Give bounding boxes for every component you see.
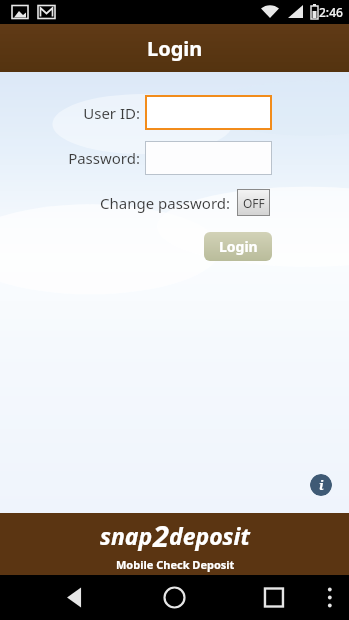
button[interactable]: Information [310,474,332,496]
button[interactable]: Password input [145,141,272,175]
staticText: Password: [28,148,140,168]
button[interactable]: Login [204,232,272,261]
staticText: deposit [169,520,250,551]
staticText: User ID: [28,103,140,123]
staticText: i [319,476,324,494]
button[interactable]: OFF [237,189,270,216]
staticText: 2 [153,516,169,555]
staticText: Login [219,237,258,256]
staticText: Login [147,35,203,62]
staticText: Change password: [100,193,231,213]
button[interactable]: User ID input [145,95,272,130]
staticText: OFF [243,195,265,211]
staticText: Mobile Check Deposit [116,557,235,572]
staticText: 2:46 [319,4,343,20]
staticText: snap [100,520,153,551]
